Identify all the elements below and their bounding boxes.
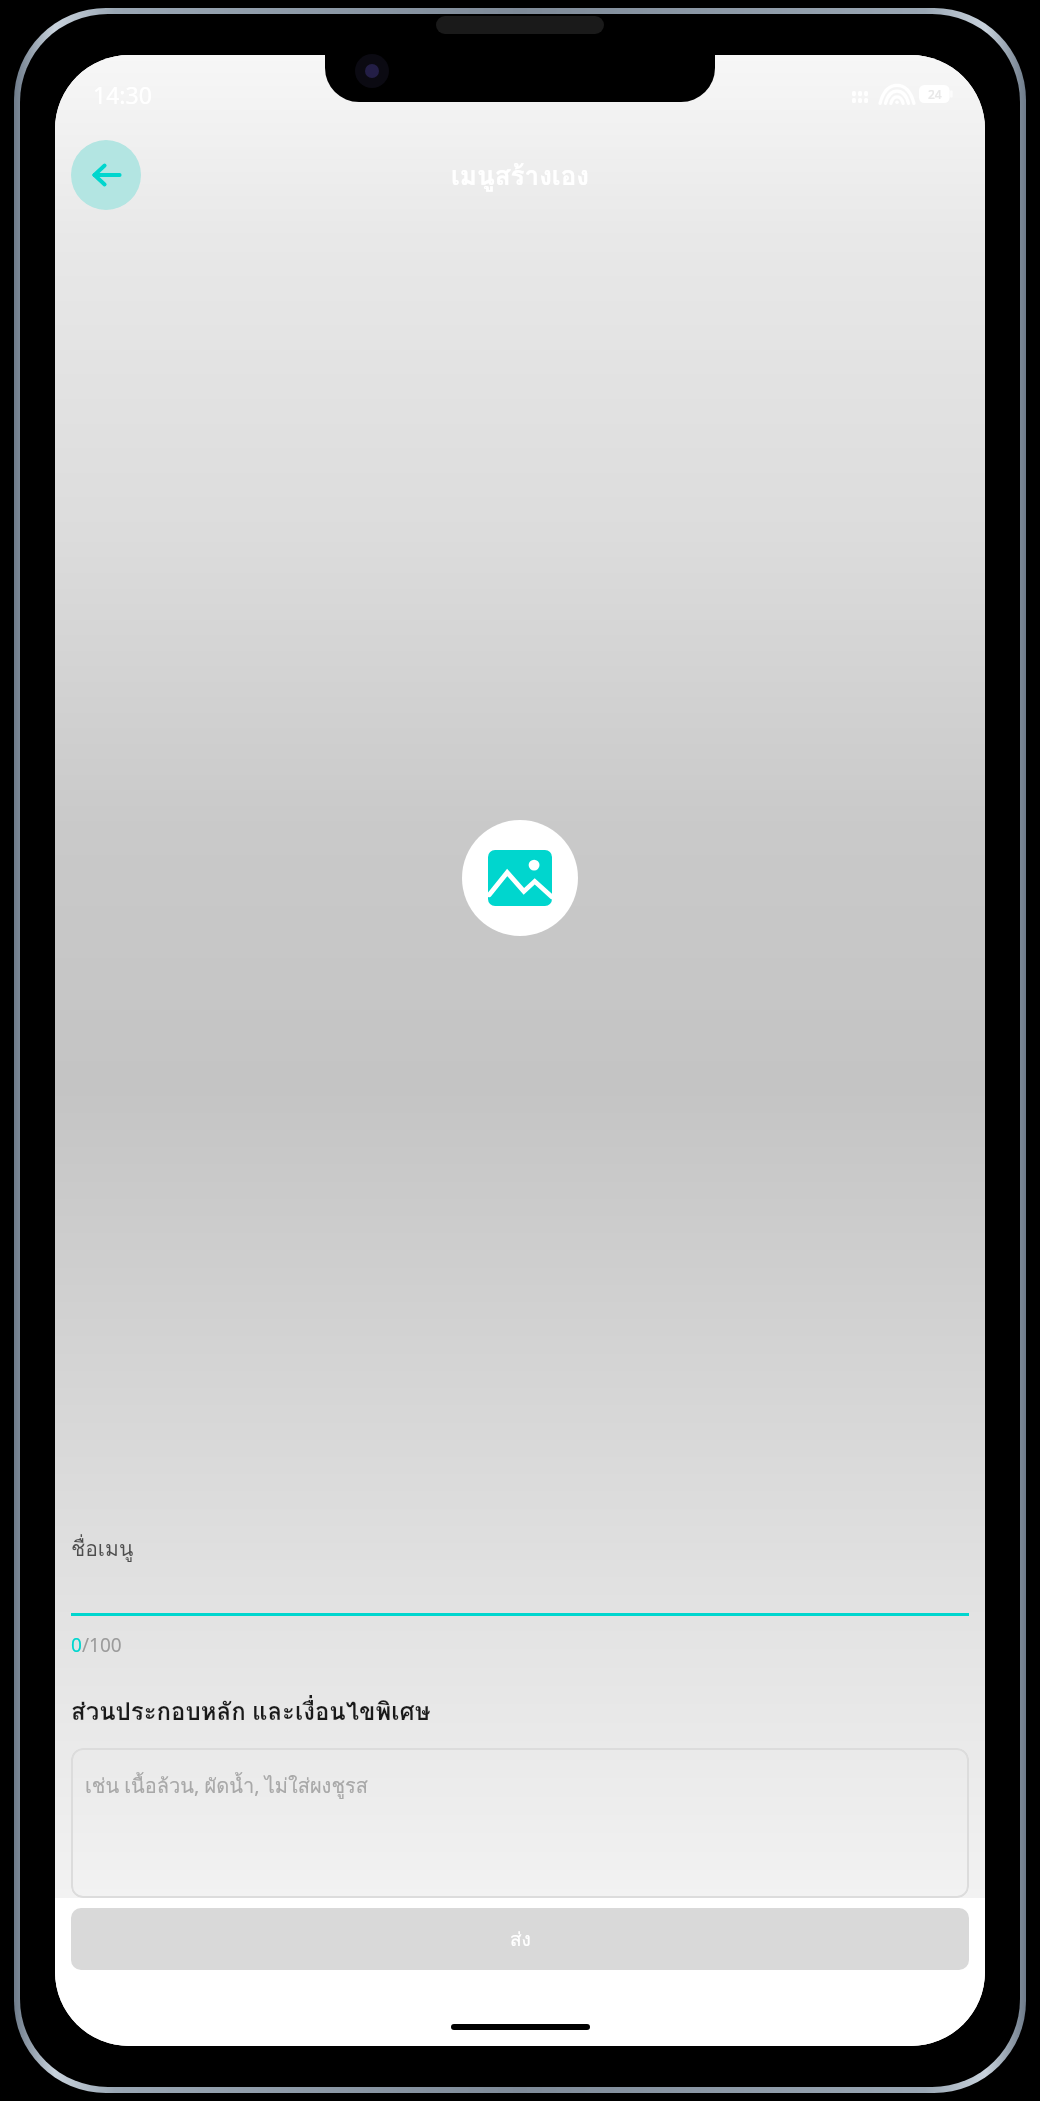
button[interactable]: Back [71,140,141,210]
button[interactable]: เช่น เนื้อล้วน, ผัดน้ำ, ไม่ใส่ผงชูรส [71,1748,969,1898]
staticText: 0 [71,1632,82,1658]
staticText: เมนูสร้างเอง [55,155,985,196]
staticText: ส่ง [510,1924,531,1954]
staticText: ชื่อเมนู [71,1532,134,1565]
staticText: /100 [82,1632,122,1658]
button[interactable]: Add photo [462,820,578,936]
staticText: 14:30 [93,79,152,110]
staticText: 24 [928,86,942,102]
staticText: ส่วนประกอบหลัก และเงื่อนไขพิเศษ [71,1692,431,1730]
staticText: เช่น เนื้อล้วน, ผัดน้ำ, ไม่ใส่ผงชูรส [85,1770,368,1802]
